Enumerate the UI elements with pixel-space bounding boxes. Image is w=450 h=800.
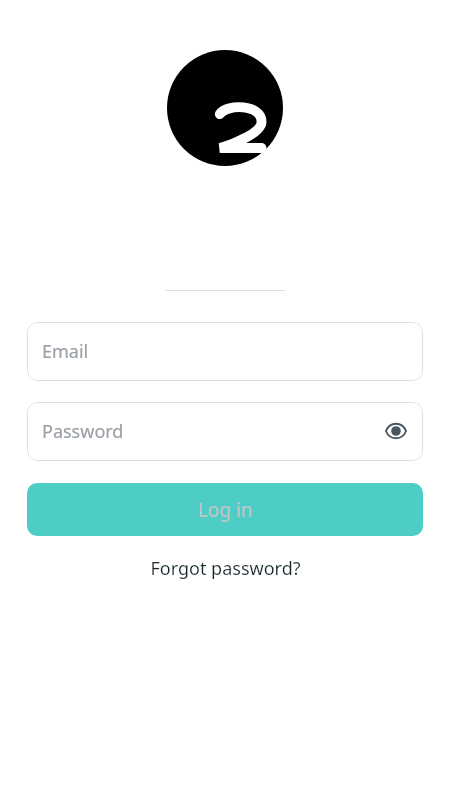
button[interactable]: Forgot password?	[140, 550, 311, 587]
button[interactable]: Log in	[27, 483, 423, 536]
staticText: Email	[42, 339, 89, 364]
button[interactable]: Show password	[378, 413, 414, 449]
staticText: Forgot password?	[150, 556, 301, 581]
button[interactable]: Password	[27, 402, 423, 461]
button[interactable]: Email	[27, 322, 423, 381]
staticText: Log in	[198, 497, 253, 523]
staticText: Password	[42, 419, 124, 444]
